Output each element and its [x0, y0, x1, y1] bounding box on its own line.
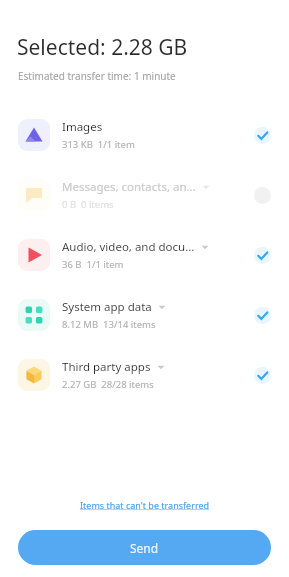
staticText: 313 KB 1/1 item: [62, 138, 135, 151]
staticText: System app data: [62, 299, 152, 315]
staticText: 0 B 0 items: [62, 198, 114, 211]
button[interactable]: Selected: [249, 122, 275, 148]
button[interactable]: Selected: [249, 302, 275, 328]
staticText: Send: [130, 540, 159, 556]
button[interactable]: Items that can't be transferred: [0, 496, 289, 514]
staticText: Third party apps: [62, 359, 151, 375]
button[interactable]: Third party apps: [0, 345, 289, 405]
button[interactable]: Selected: [249, 242, 275, 268]
staticText: 2.27 GB 28/28 items: [62, 378, 154, 391]
staticText: Audio, video, and docu…: [62, 239, 195, 255]
button[interactable]: Audio, video, and docu…: [0, 225, 289, 285]
staticText: Selected: 2.28 GB: [17, 33, 188, 62]
staticText: Items that can't be transferred: [80, 499, 210, 511]
button[interactable]: Selected: [249, 362, 275, 388]
staticText: Images: [62, 119, 103, 135]
button[interactable]: Send: [18, 530, 271, 565]
button[interactable]: Images: [0, 105, 289, 165]
staticText: Estimated transfer time: 1 minute: [18, 69, 176, 83]
button[interactable]: Not selected: [249, 182, 275, 208]
staticText: 36 B 1/1 item: [62, 258, 124, 271]
button[interactable]: System app data: [0, 285, 289, 345]
staticText: 8.12 MB 13/14 items: [62, 318, 156, 331]
button[interactable]: Messages, contacts, an…: [0, 165, 289, 225]
staticText: Messages, contacts, an…: [62, 179, 196, 195]
